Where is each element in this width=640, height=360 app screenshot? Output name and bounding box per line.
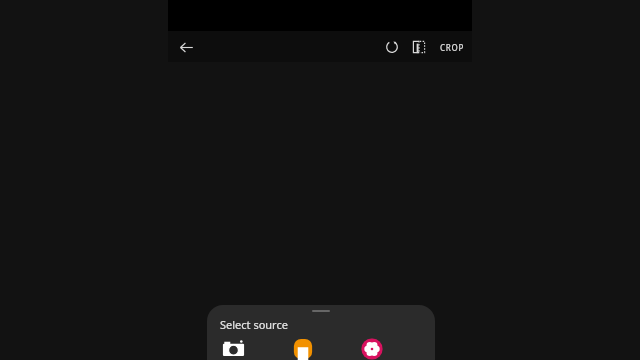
button[interactable]: Rotate: [380, 35, 404, 59]
button[interactable]: CROP: [435, 37, 470, 58]
button[interactable]: Gallery: [359, 338, 385, 360]
button[interactable]: Back: [173, 34, 199, 60]
button[interactable]: Files: [290, 338, 316, 360]
staticText: CROP: [440, 42, 465, 53]
button[interactable]: Flip: [407, 35, 431, 59]
button[interactable]: Camera: [220, 338, 246, 360]
staticText: Select source: [220, 317, 288, 332]
